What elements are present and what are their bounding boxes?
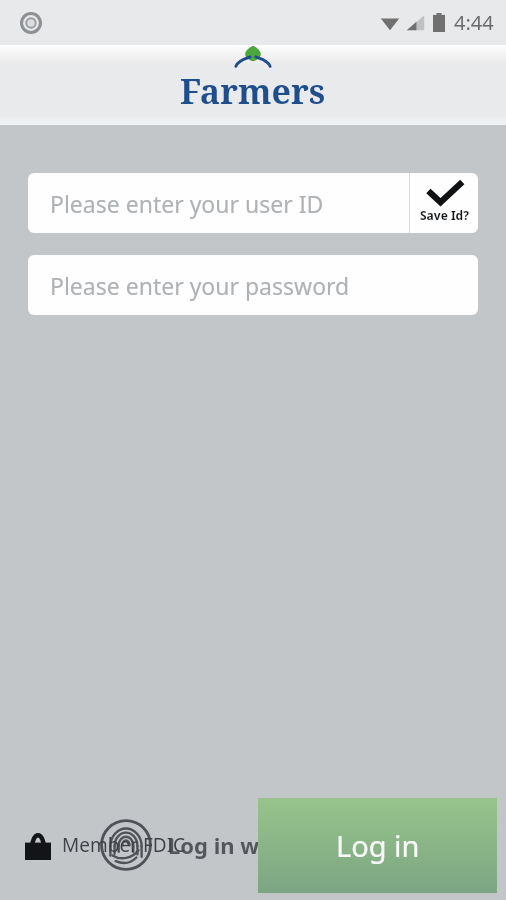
staticText: 4:44 bbox=[454, 9, 494, 36]
button[interactable]: Please enter your password bbox=[28, 255, 478, 315]
button[interactable]: Log in with fingerprint bbox=[96, 815, 420, 875]
button[interactable]: Save Id? bbox=[410, 173, 478, 233]
staticText: Log in with fingerprint bbox=[168, 830, 416, 860]
button[interactable]: Member FDIC bbox=[22, 827, 189, 863]
staticText: Member FDIC bbox=[62, 832, 186, 858]
staticText: Save Id? bbox=[420, 207, 469, 223]
staticText: Farmers bbox=[180, 68, 326, 114]
staticText: Please enter your password bbox=[50, 270, 350, 301]
staticText: Please enter your user ID bbox=[50, 188, 324, 219]
button[interactable]: Please enter your user ID bbox=[28, 173, 409, 233]
button[interactable]: Log in bbox=[258, 798, 497, 893]
staticText: Log in bbox=[336, 826, 420, 865]
